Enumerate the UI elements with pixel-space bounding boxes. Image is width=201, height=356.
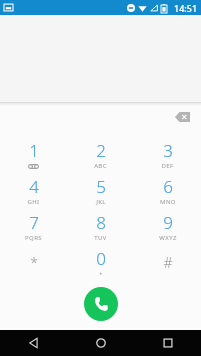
button[interactable]: 0 (67, 244, 134, 280)
staticText: 8 (96, 211, 106, 234)
staticText: 14:51 (174, 2, 198, 14)
button[interactable]: 7 (0, 208, 67, 244)
staticText: 5 (96, 175, 106, 198)
staticText: 0 (96, 247, 106, 270)
staticText: # (163, 253, 173, 272)
button[interactable]: Home (67, 330, 134, 356)
staticText: JKL (96, 198, 106, 206)
button[interactable]: Back (0, 330, 67, 356)
staticText: DEF (161, 162, 174, 170)
staticText: TUV (94, 234, 107, 242)
button[interactable]: 9 (134, 208, 201, 244)
staticText: 6 (163, 175, 173, 198)
staticText: MNO (160, 198, 176, 206)
button[interactable]: 6 (134, 172, 201, 208)
staticText: 9 (163, 211, 173, 234)
button[interactable]: # (134, 244, 201, 280)
staticText: ABC (94, 162, 107, 170)
button[interactable]: Backspace (171, 108, 193, 126)
button[interactable]: 4 (0, 172, 67, 208)
staticText: 1 (29, 139, 39, 162)
button[interactable]: 8 (67, 208, 134, 244)
staticText: + (99, 270, 103, 278)
button[interactable]: 3 (134, 136, 201, 172)
staticText: WXYZ (159, 234, 177, 242)
staticText: 7 (29, 211, 39, 234)
staticText: 4 (29, 175, 39, 198)
staticText: * (30, 253, 38, 272)
button[interactable]: 2 (67, 136, 134, 172)
button[interactable]: 5 (67, 172, 134, 208)
staticText: GHI (27, 198, 40, 206)
button[interactable]: Call (84, 287, 118, 321)
button[interactable]: 1 (0, 136, 67, 172)
staticText: 2 (96, 139, 106, 162)
staticText: PQRS (25, 234, 42, 242)
button[interactable]: Recents (134, 330, 201, 356)
button[interactable]: * (0, 244, 67, 280)
staticText: 3 (163, 139, 173, 162)
